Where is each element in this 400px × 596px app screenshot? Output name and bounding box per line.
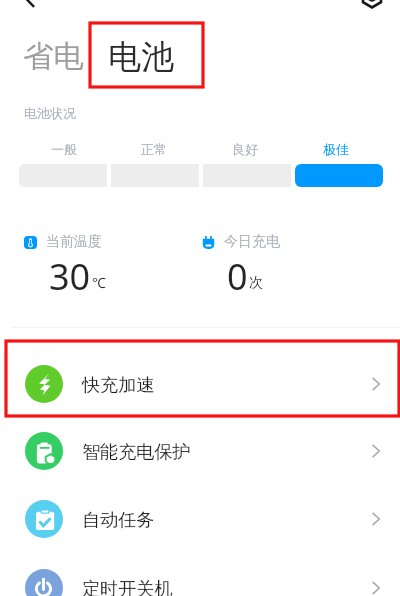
button[interactable]: 智能充电保护 [0, 417, 400, 484]
staticText: 省电 [23, 38, 84, 76]
button[interactable]: 自动任务 [0, 485, 400, 552]
staticText: 极佳 [323, 141, 349, 157]
staticText: 次 [249, 274, 263, 292]
button[interactable]: Settings [354, 0, 390, 15]
staticText: 定时开关机 [82, 578, 173, 596]
button[interactable]: Back [13, 0, 47, 11]
staticText: 30 [49, 252, 91, 301]
staticText: 正常 [141, 141, 167, 157]
button[interactable]: 电池 [108, 36, 174, 78]
staticText: 今日充电 [224, 233, 280, 251]
staticText: 0 [227, 252, 248, 301]
staticText: 智能充电保护 [82, 441, 191, 464]
button[interactable]: 省电 [23, 38, 84, 76]
staticText: 电池状况 [24, 105, 76, 121]
staticText: 电池 [108, 36, 174, 78]
staticText: 自动任务 [82, 509, 155, 532]
staticText: 良好 [232, 141, 258, 157]
button[interactable]: 快充加速 [0, 350, 400, 417]
button[interactable]: 定时开关机 [0, 554, 400, 596]
staticText: 当前温度 [46, 233, 102, 251]
staticText: 一般 [51, 141, 77, 157]
staticText: 快充加速 [82, 374, 155, 397]
staticText: ℃ [92, 273, 106, 292]
